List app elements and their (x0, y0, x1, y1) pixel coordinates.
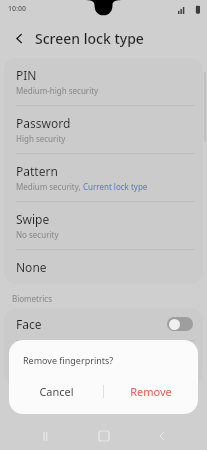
button[interactable]: None (4, 250, 203, 284)
button[interactable]: Recents (32, 423, 58, 449)
staticText: Medium security, (16, 181, 83, 192)
staticText: Biometrics (12, 293, 53, 304)
staticText: Remove fingerprints? (23, 354, 114, 366)
staticText: High security (16, 133, 66, 144)
staticText: No security (16, 229, 59, 240)
button[interactable]: Cancel (9, 377, 103, 406)
staticText: Face (16, 316, 42, 332)
staticText: Remove (130, 384, 172, 399)
staticText: PIN (16, 67, 37, 83)
staticText: Cancel (39, 384, 74, 399)
button[interactable]: Home (91, 423, 117, 449)
staticText: 10:00 (8, 4, 26, 14)
staticText: Medium-high security (16, 85, 99, 96)
button[interactable]: PIN (4, 58, 203, 105)
button[interactable]: Pattern (4, 154, 203, 201)
button[interactable]: Toggle off (167, 317, 193, 331)
staticText: Swipe (16, 211, 50, 227)
staticText: Password (16, 115, 71, 131)
staticText: Pattern (16, 163, 58, 179)
button[interactable]: Fingerprints (4, 341, 203, 386)
staticText: Screen lock type (35, 29, 144, 48)
button[interactable]: Password (4, 106, 203, 153)
button[interactable]: Face (4, 308, 203, 340)
staticText: Fingerprints (16, 349, 85, 365)
button[interactable]: Remove (104, 377, 198, 406)
staticText: Current lock type (83, 181, 148, 192)
staticText: None (16, 259, 47, 275)
button[interactable]: Swipe (4, 202, 203, 249)
button[interactable]: Back (6, 25, 32, 51)
